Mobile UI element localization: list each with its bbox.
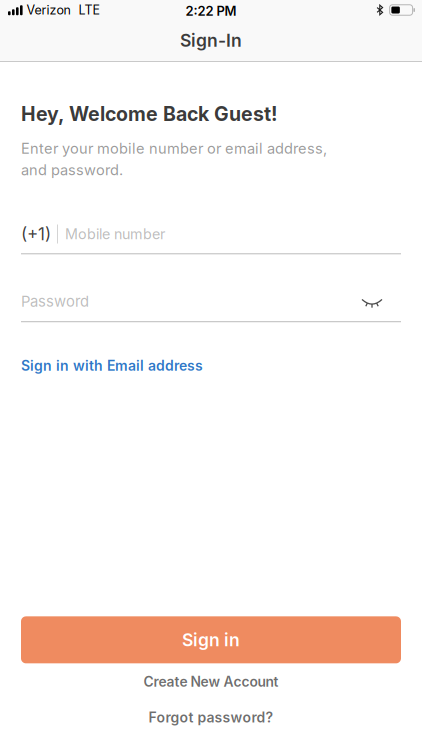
staticText: Enter your mobile number or email addres… xyxy=(21,140,327,179)
button[interactable]: Sign in xyxy=(21,616,401,663)
button[interactable]: Create New Account xyxy=(21,673,401,690)
staticText: Forgot password? xyxy=(148,709,273,726)
staticText: Sign-In xyxy=(180,30,242,51)
staticText: 2:22 PM xyxy=(185,3,236,19)
staticText: Verizon xyxy=(27,2,71,17)
staticText: Password xyxy=(21,292,89,310)
staticText: Mobile number xyxy=(65,225,165,243)
staticText: (+1) xyxy=(21,224,51,244)
staticText: Create New Account xyxy=(143,673,278,690)
button[interactable]: Forgot password? xyxy=(21,709,401,726)
button[interactable]: Sign in with Email address xyxy=(21,357,203,374)
staticText: Sign in with Email address xyxy=(21,357,203,374)
staticText: LTE xyxy=(79,2,101,17)
staticText: Hey, Welcome Back Guest! xyxy=(21,102,278,126)
button[interactable]: Show password xyxy=(361,296,401,306)
staticText: Sign in xyxy=(182,629,240,650)
